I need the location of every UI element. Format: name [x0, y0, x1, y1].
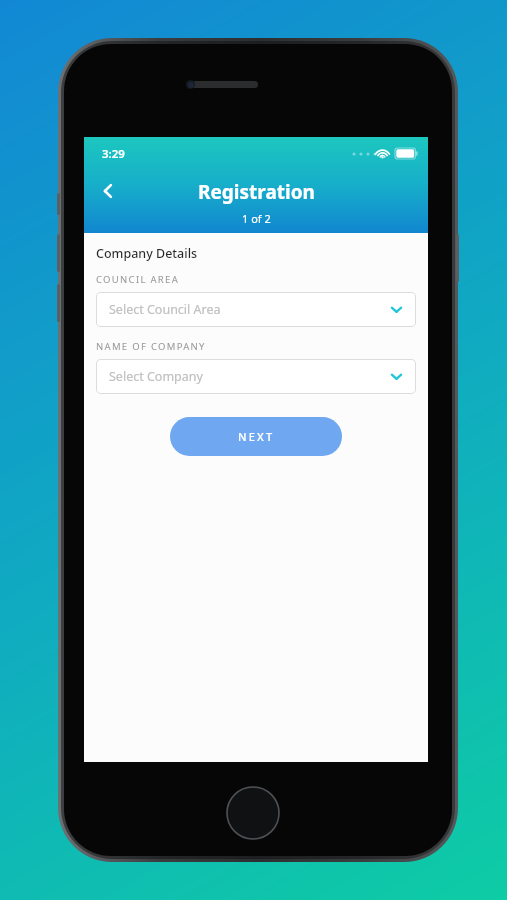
staticText: Registration — [198, 179, 315, 205]
staticText: COUNCIL AREA — [96, 273, 180, 286]
staticText: Select Council Area — [109, 301, 390, 318]
staticText: Company Details — [96, 245, 198, 262]
staticText: NEXT — [238, 429, 275, 444]
staticText: NAME OF COMPANY — [96, 340, 206, 353]
button[interactable]: Select Company — [96, 359, 416, 394]
staticText: 1 of 2 — [242, 211, 271, 226]
button[interactable]: Back — [88, 171, 128, 211]
staticText: Select Company — [109, 368, 390, 385]
button[interactable]: NEXT — [170, 417, 342, 456]
button[interactable]: Select Council Area — [96, 292, 416, 327]
staticText: 3:29 — [102, 146, 125, 162]
